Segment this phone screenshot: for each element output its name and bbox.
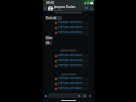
staticText: Les messages sont chiffrés bbox=[55, 11, 82, 14]
staticText: Jacques Dorian bbox=[54, 5, 76, 9]
staticText: Mardi 12 mars bbox=[61, 49, 76, 52]
button[interactable]: exemple.com/abcd bbox=[54, 77, 89, 81]
button[interactable]: Emoji bbox=[48, 93, 87, 98]
staticText: Jeudi 14 mars bbox=[62, 73, 76, 76]
button[interactable]: Ok pour moi bbox=[45, 41, 52, 45]
staticText: Tu es où demain ? bbox=[46, 16, 62, 20]
button[interactable]: exemple.com/abcd bbox=[54, 59, 89, 63]
button[interactable]: exemple.com/abcd bbox=[54, 21, 89, 25]
button[interactable]: Tu es où demain ? bbox=[45, 16, 62, 20]
staticText: 20:16 bbox=[46, 1, 55, 5]
staticText: exemple.com/abcd bbox=[58, 64, 82, 67]
button[interactable]: D'accord bbox=[45, 36, 53, 40]
staticText: Ok pour moi bbox=[46, 41, 52, 45]
staticText: en ligne bbox=[54, 9, 62, 11]
staticText: exemple.com/abcd bbox=[58, 59, 82, 62]
button[interactable]: Attach bbox=[44, 94, 48, 98]
button[interactable]: exemple.com/abcd bbox=[54, 26, 89, 30]
button[interactable]: Back bbox=[43, 5, 48, 11]
button[interactable]: exemple.com/abcd bbox=[54, 82, 89, 86]
staticText: exemple.com/abcd bbox=[58, 26, 82, 29]
button[interactable]: Emoji bbox=[77, 94, 80, 97]
button[interactable]: exemple.com/abcd bbox=[54, 54, 89, 58]
button[interactable]: Camera bbox=[83, 94, 86, 97]
button[interactable]: exemple.com/abcd bbox=[54, 87, 89, 91]
staticText: exemple.com/abcd bbox=[58, 21, 82, 24]
button[interactable]: Video call bbox=[84, 5, 89, 11]
staticText: exemple.com/abcd bbox=[58, 54, 82, 57]
button[interactable]: Voice call bbox=[89, 5, 94, 11]
staticText: exemple.com/abcd bbox=[58, 82, 82, 85]
staticText: D'accord bbox=[46, 36, 53, 40]
staticText: exemple.com/abcd bbox=[58, 77, 82, 80]
staticText: exemple.com/abcd bbox=[58, 31, 82, 34]
button[interactable]: Voice message bbox=[87, 93, 93, 98]
button[interactable]: exemple.com/abcd bbox=[54, 31, 89, 35]
staticText: exemple.com/abcd bbox=[58, 87, 82, 90]
button[interactable]: exemple.com/abcd bbox=[54, 64, 89, 68]
